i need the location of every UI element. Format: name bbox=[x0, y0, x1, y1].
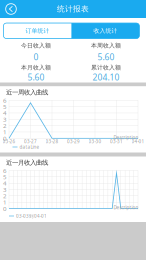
staticText: 0 bbox=[3, 134, 7, 142]
staticText: 1 bbox=[3, 198, 7, 206]
staticText: 1 bbox=[3, 128, 7, 136]
staticText: 5 bbox=[3, 173, 7, 181]
staticText: 5.60 bbox=[97, 51, 114, 63]
staticText: 今日收入额 bbox=[21, 42, 51, 49]
staticText: Description bbox=[113, 134, 138, 141]
staticText: 0 bbox=[33, 51, 38, 63]
staticText: 6 bbox=[3, 96, 7, 104]
staticText: 统计报表 bbox=[57, 4, 89, 14]
staticText: 订单统计 bbox=[25, 27, 49, 34]
button[interactable]: 订单统计 bbox=[3, 23, 71, 39]
button[interactable]: Back bbox=[0, 0, 22, 18]
staticText: 5 bbox=[3, 102, 7, 111]
staticText: 近一周收入曲线 bbox=[6, 88, 48, 96]
staticText: 收入统计 bbox=[93, 27, 117, 34]
staticText: 03-29 bbox=[67, 138, 80, 145]
staticText: 03-28 bbox=[45, 138, 58, 145]
staticText: 4 bbox=[3, 109, 7, 117]
staticText: 4 bbox=[3, 179, 7, 187]
staticText: 累计收入额 bbox=[91, 64, 121, 71]
staticText: 03-03到04-01 bbox=[16, 213, 47, 219]
staticText: 03-26 bbox=[2, 138, 15, 145]
staticText: Description bbox=[113, 204, 138, 211]
staticText: 本月收入额 bbox=[21, 64, 51, 71]
staticText: 6 bbox=[3, 166, 7, 175]
button[interactable]: 收入统计 bbox=[71, 23, 139, 39]
staticText: 3 bbox=[3, 115, 7, 123]
staticText: 03-31 bbox=[110, 138, 123, 145]
staticText: 0 bbox=[3, 204, 7, 213]
staticText: 2 bbox=[3, 192, 7, 200]
staticText: 03-27 bbox=[24, 138, 37, 145]
staticText: 2 bbox=[3, 121, 7, 130]
staticText: 3 bbox=[3, 185, 7, 194]
staticText: 本周收入额 bbox=[91, 42, 121, 49]
staticText: 03-30 bbox=[88, 138, 101, 145]
staticText: 04-01 bbox=[131, 138, 144, 145]
staticText: 5.60 bbox=[27, 71, 44, 83]
staticText: 近一月收入曲线 bbox=[6, 158, 48, 167]
staticText: 204.10 bbox=[92, 71, 119, 83]
staticText: dataLine bbox=[19, 144, 39, 150]
